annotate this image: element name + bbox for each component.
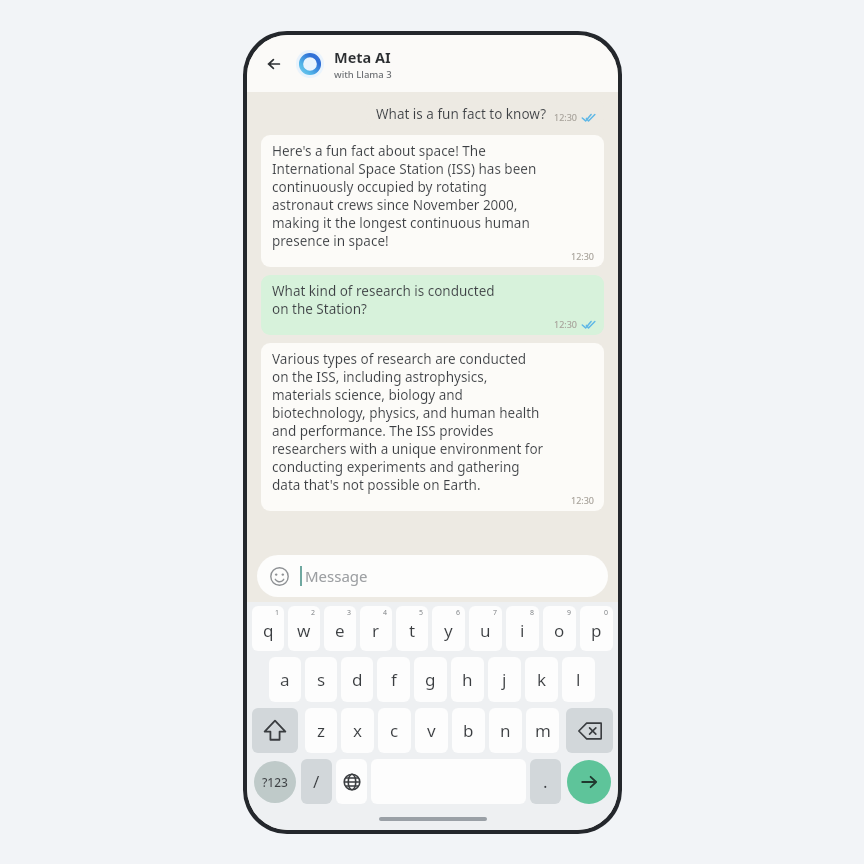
staticText: 1: [275, 608, 280, 618]
button[interactable]: f: [377, 657, 410, 702]
staticText: .: [543, 770, 548, 793]
button[interactable]: Send: [567, 760, 611, 804]
button[interactable]: 1: [252, 606, 284, 651]
button[interactable]: k: [525, 657, 558, 702]
staticText: d: [352, 668, 363, 691]
button[interactable]: 4: [360, 606, 392, 651]
staticText: Meta AI: [334, 47, 391, 67]
staticText: o: [554, 619, 565, 642]
button[interactable]: 5: [396, 606, 428, 651]
button[interactable]: Message: [257, 555, 608, 597]
button[interactable]: 9: [543, 606, 576, 651]
staticText: 6: [456, 608, 461, 618]
staticText: 8: [530, 608, 535, 618]
staticText: l: [576, 668, 581, 691]
button[interactable]: Backspace: [566, 708, 613, 753]
button[interactable]: l: [562, 657, 595, 702]
button[interactable]: n: [489, 708, 522, 753]
staticText: Here's a fun fact about space! The Inter…: [272, 142, 537, 250]
staticText: y: [444, 619, 453, 642]
staticText: s: [317, 668, 326, 691]
button[interactable]: Shift: [252, 708, 298, 753]
button[interactable]: b: [452, 708, 485, 753]
staticText: b: [463, 719, 474, 742]
staticText: /: [313, 770, 320, 793]
staticText: 5: [419, 608, 424, 618]
button[interactable]: c: [378, 708, 411, 753]
button[interactable]: m: [526, 708, 559, 753]
staticText: j: [502, 668, 507, 691]
staticText: p: [591, 619, 602, 642]
staticText: a: [280, 668, 290, 691]
button[interactable]: d: [341, 657, 373, 702]
button[interactable]: x: [341, 708, 374, 753]
staticText: x: [353, 719, 362, 742]
staticText: What kind of research is conducted on th…: [272, 282, 495, 318]
button[interactable]: Here's a fun fact about space! The Inter…: [261, 135, 604, 267]
button[interactable]: Various types of research are conducted …: [261, 343, 604, 511]
staticText: 7: [493, 608, 498, 618]
staticText: v: [427, 719, 436, 742]
staticText: 4: [383, 608, 388, 618]
staticText: What is a fun fact to know?: [376, 105, 547, 123]
button[interactable]: g: [414, 657, 447, 702]
staticText: 9: [567, 608, 572, 618]
staticText: 12:30: [571, 494, 595, 506]
staticText: 0: [604, 608, 609, 618]
staticText: 12:30: [554, 111, 578, 123]
staticText: h: [462, 668, 473, 691]
button[interactable]: What kind of research is conducted on th…: [261, 275, 604, 335]
button[interactable]: Meta AI: [334, 47, 392, 81]
staticText: g: [425, 668, 436, 691]
staticText: Various types of research are conducted …: [272, 350, 544, 494]
staticText: w: [297, 619, 311, 642]
staticText: n: [500, 719, 511, 742]
staticText: 12:30: [554, 318, 578, 330]
button[interactable]: a: [269, 657, 301, 702]
button[interactable]: 7: [469, 606, 502, 651]
button[interactable]: What is a fun fact to know?: [366, 99, 604, 128]
button[interactable]: 2: [288, 606, 320, 651]
staticText: c: [390, 719, 399, 742]
staticText: z: [317, 719, 325, 742]
button[interactable]: ?123: [254, 761, 296, 803]
staticText: 12:30: [571, 250, 595, 262]
button[interactable]: 8: [506, 606, 539, 651]
button[interactable]: Back: [259, 48, 291, 80]
staticText: i: [520, 619, 525, 642]
staticText: e: [335, 619, 345, 642]
button[interactable]: .: [530, 759, 561, 804]
staticText: with Llama 3: [334, 68, 392, 81]
button[interactable]: v: [415, 708, 448, 753]
staticText: r: [372, 619, 380, 642]
staticText: 2: [311, 608, 316, 618]
button[interactable]: /: [301, 759, 332, 804]
button[interactable]: Language: [336, 759, 367, 804]
staticText: ?123: [262, 774, 288, 790]
staticText: q: [263, 619, 274, 642]
button[interactable]: j: [488, 657, 521, 702]
button[interactable]: 6: [432, 606, 465, 651]
button[interactable]: s: [305, 657, 337, 702]
button[interactable]: 0: [580, 606, 613, 651]
staticText: f: [391, 668, 397, 691]
button[interactable]: h: [451, 657, 484, 702]
staticText: m: [535, 719, 551, 742]
button[interactable]: 3: [324, 606, 356, 651]
staticText: u: [480, 619, 491, 642]
staticText: k: [537, 668, 547, 691]
button[interactable]: z: [305, 708, 337, 753]
staticText: t: [409, 619, 416, 642]
staticText: 3: [347, 608, 352, 618]
staticText: Message: [305, 566, 368, 586]
